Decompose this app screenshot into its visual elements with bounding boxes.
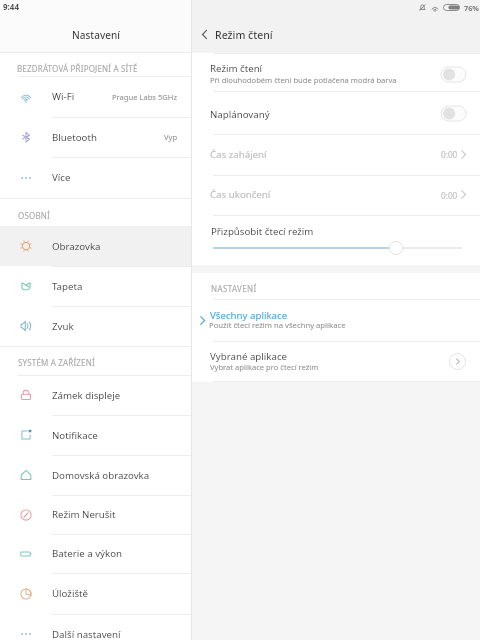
button[interactable]: Zvuk [0, 306, 192, 346]
staticText: Naplánovaný [210, 108, 270, 121]
button[interactable]: Více [0, 157, 192, 198]
staticText: Wi-Fi [52, 90, 75, 103]
button[interactable]: Notifikace [0, 415, 192, 455]
staticText: Notifikace [52, 429, 98, 442]
staticText: Zámek displeje [52, 389, 121, 402]
staticText: Baterie a výkon [52, 547, 123, 560]
staticText: Přizpůsobit čtecí režim [211, 225, 314, 238]
staticText: Úložiště [52, 587, 88, 600]
button[interactable]: Zámek displeje [0, 375, 192, 415]
staticText: Domovská obrazovka [52, 469, 150, 482]
staticText: Režim čtení [215, 28, 273, 42]
staticText: Vybrané aplikace [210, 350, 288, 363]
staticText: Čas ukončení [210, 188, 271, 201]
staticText: Při dlouhodobém čtení bude potlačena mod… [210, 75, 397, 85]
staticText: Vyp [164, 132, 178, 142]
button[interactable] [192, 134, 480, 175]
staticText: 76% [464, 3, 479, 13]
staticText: Zvuk [52, 320, 74, 333]
staticText: Režim čtení [210, 62, 263, 75]
button[interactable]: Wi-Fi [0, 76, 192, 117]
staticText: Tapeta [52, 280, 83, 293]
staticText: 0:00 [441, 149, 458, 160]
staticText: NASTAVENÍ [211, 283, 257, 294]
staticText: OSOBNÍ [18, 210, 50, 221]
button[interactable]: Tapeta [0, 266, 192, 306]
staticText: Vybrat aplikace pro čtecí režim [210, 362, 319, 372]
button[interactable]: Režim Nerušit [0, 495, 192, 534]
staticText: Čas zahájení [210, 148, 267, 161]
staticText: BEZDRÁTOVÁ PŘIPOJENÍ A SÍTĚ [17, 63, 138, 74]
staticText: Prague Labs 5GHz [112, 92, 178, 102]
staticText: Všechny aplikace [210, 309, 288, 322]
button[interactable]: Domovská obrazovka [0, 455, 192, 495]
button[interactable]: Úložiště [0, 573, 192, 614]
button[interactable] [192, 54, 480, 91]
button[interactable] [192, 299, 480, 341]
button[interactable]: Přepínač [438, 103, 468, 123]
staticText: Obrazovka [52, 240, 101, 253]
staticText: Další nastavení [52, 628, 121, 640]
staticText: SYSTÉM A ZAŘÍZENÍ [18, 357, 95, 368]
staticText: Více [52, 171, 71, 184]
button[interactable]: Baterie a výkon [0, 534, 192, 573]
button[interactable]: Další nastavení [0, 614, 192, 640]
staticText: Režim Nerušit [52, 508, 116, 521]
staticText: 0:00 [441, 190, 458, 201]
button[interactable]: Bluetooth [0, 117, 192, 157]
button[interactable]: Přepínač [438, 64, 468, 84]
button[interactable] [192, 341, 480, 382]
staticText: 9:44 [3, 1, 19, 12]
button[interactable]: Obrazovka [0, 226, 192, 266]
button[interactable]: Otevřít [449, 353, 466, 370]
button[interactable]: Zpět [194, 24, 214, 44]
staticText: Použít čtecí režim na všechny aplikace [209, 320, 346, 330]
button[interactable] [192, 175, 480, 215]
button[interactable] [192, 91, 480, 134]
staticText: Nastavení [72, 28, 120, 42]
staticText: Bluetooth [52, 131, 97, 144]
